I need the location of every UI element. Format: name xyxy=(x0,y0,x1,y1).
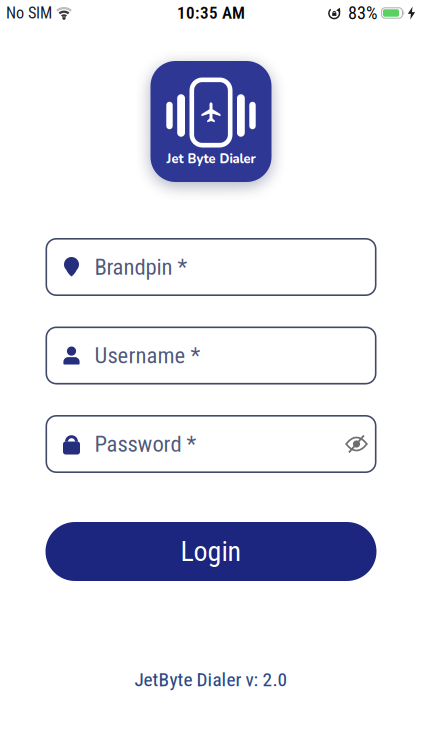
button[interactable]: Brandpin * xyxy=(45,238,376,296)
button[interactable]: Username * xyxy=(45,326,376,384)
staticText: Username * xyxy=(94,342,200,369)
staticText: 83% xyxy=(348,2,377,24)
staticText: JetByte Dialer v: 2.0 xyxy=(134,668,287,691)
staticText: Login xyxy=(180,535,241,568)
button[interactable]: Password * xyxy=(45,415,376,473)
button[interactable]: Login xyxy=(45,522,376,581)
button[interactable]: Show password xyxy=(345,434,376,453)
staticText: Brandpin * xyxy=(94,254,187,280)
staticText: Password * xyxy=(94,431,196,457)
staticText: 10:35 AM xyxy=(177,3,245,23)
staticText: No SIM xyxy=(6,3,52,23)
staticText: Jet Byte Dialer xyxy=(166,150,255,168)
